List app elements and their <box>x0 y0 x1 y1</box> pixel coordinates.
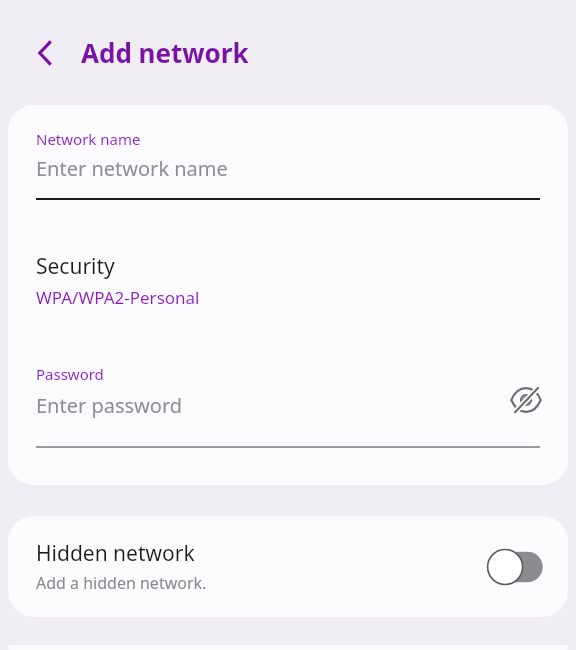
staticText: Password <box>36 364 104 384</box>
button[interactable]: Show password <box>504 378 548 422</box>
button[interactable]: Hidden network toggle <box>487 548 545 586</box>
staticText: Security <box>36 252 115 281</box>
staticText: Hidden network <box>36 539 195 568</box>
button[interactable]: Network name <box>8 105 568 200</box>
staticText: Network name <box>36 129 141 149</box>
staticText: Add network <box>81 35 249 70</box>
button[interactable]: Hidden network <box>8 516 568 617</box>
staticText: Enter network name <box>36 155 228 182</box>
button[interactable]: Back <box>22 29 70 77</box>
staticText: WPA/WPA2-Personal <box>36 286 200 309</box>
staticText: Enter password <box>36 392 183 419</box>
button[interactable]: Password <box>8 352 568 448</box>
staticText: Add a hidden network. <box>36 572 207 594</box>
button[interactable]: Security <box>8 250 568 328</box>
